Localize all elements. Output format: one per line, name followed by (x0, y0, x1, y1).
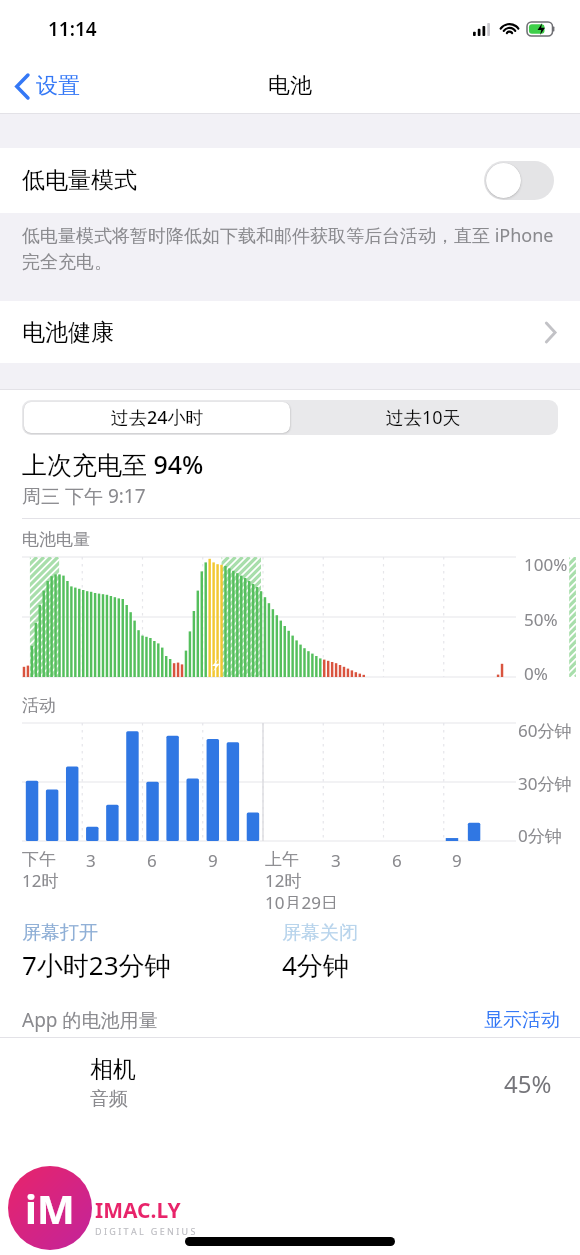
staticText: 低电量模式 (22, 166, 137, 195)
button[interactable]: 屏幕关闭 (282, 921, 358, 983)
button[interactable]: 显示活动 (464, 1004, 580, 1036)
staticText: 相机 (90, 1055, 136, 1084)
staticText: 60分钟 (518, 719, 572, 742)
staticText: 3 (331, 849, 341, 872)
staticText: 活动 (22, 695, 56, 716)
staticText: 上午 12时 10月29日 (265, 849, 338, 909)
staticText: 下午 12时 (22, 849, 59, 893)
staticText: 显示活动 (484, 1008, 560, 1032)
button[interactable]: 相机 (0, 1038, 580, 1128)
staticText: 6 (392, 849, 402, 872)
button[interactable]: 设置 (0, 66, 92, 106)
staticText: 电池健康 (22, 318, 114, 347)
button[interactable]: 过去24小时 (24, 402, 290, 433)
staticText: 45% (504, 1067, 552, 1100)
staticText: 0% (524, 662, 548, 685)
staticText: 7小时23分钟 (22, 947, 171, 983)
staticText: 0分钟 (518, 824, 562, 847)
staticText: 低电量模式将暂时降低如下载和邮件获取等后台活动，直至 iPhone完全充电。 (22, 223, 560, 273)
staticText: 4分钟 (282, 947, 349, 983)
staticText: 过去24小时 (111, 405, 204, 430)
button[interactable]: 低电量模式开关 (484, 161, 554, 200)
staticText: 电池 (268, 72, 312, 100)
button[interactable]: 屏幕打开 (22, 921, 282, 983)
staticText: 屏幕关闭 (282, 921, 358, 945)
staticText: 设置 (36, 72, 80, 100)
staticText: iM (25, 1181, 75, 1235)
button[interactable]: 过去10天 (290, 402, 556, 433)
staticText: 100% (524, 553, 568, 576)
staticText: 9 (208, 849, 218, 872)
staticText: 屏幕打开 (22, 921, 98, 945)
staticText: 9 (452, 849, 462, 872)
staticText: 6 (147, 849, 157, 872)
button[interactable]: 电池健康 (0, 301, 580, 363)
staticText: 过去10天 (386, 405, 461, 430)
staticText: App 的电池用量 (22, 1007, 158, 1033)
staticText: IMAC.LY (95, 1196, 181, 1225)
staticText: 音频 (90, 1087, 128, 1111)
staticText: 电池电量 (22, 529, 90, 550)
staticText: 11:14 (48, 16, 97, 42)
staticText: 30分钟 (518, 772, 572, 795)
staticText: 上次充电至 94% (22, 447, 204, 481)
staticText: D I G I T A L G E N I U S (95, 1225, 196, 1237)
staticText: 50% (524, 608, 558, 631)
staticText: 3 (86, 849, 96, 872)
button[interactable]: 低电量模式 (0, 148, 580, 213)
staticText: 周三 下午 9:17 (22, 483, 146, 509)
